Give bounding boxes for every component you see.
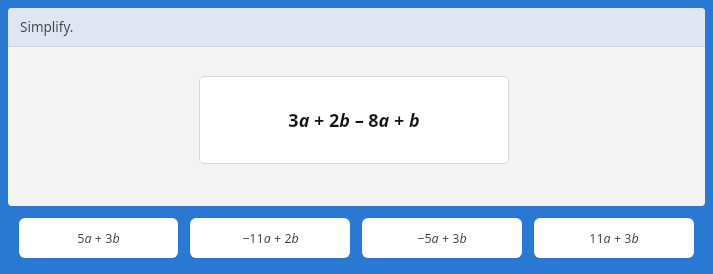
staticText: −5a + 3b — [417, 230, 467, 247]
staticText: Simplify. — [20, 18, 74, 36]
staticText: 3a + 2b – 8a + b — [288, 108, 420, 133]
button[interactable]: 5a + 3b — [19, 218, 178, 258]
button[interactable]: −11a + 2b — [190, 218, 350, 258]
staticText: 5a + 3b — [77, 230, 120, 247]
staticText: −11a + 2b — [242, 230, 299, 247]
button[interactable]: −5a + 3b — [362, 218, 522, 258]
staticText: 11a + 3b — [589, 230, 639, 247]
button[interactable]: 11a + 3b — [534, 218, 694, 258]
